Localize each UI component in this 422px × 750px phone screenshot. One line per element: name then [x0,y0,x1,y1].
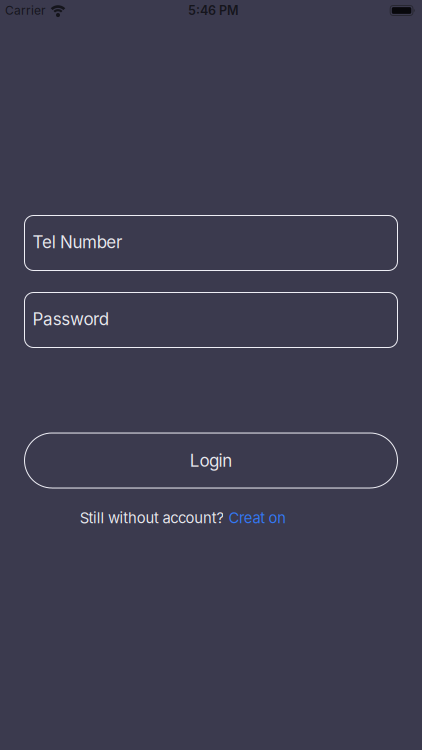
staticText: Login [190,450,232,471]
staticText: Still without account? [80,509,224,527]
staticText: Tel Number [32,232,122,252]
staticText: Creat on [228,509,286,527]
staticText: Password [32,309,109,329]
staticText: Carrier [5,3,46,18]
textField[interactable]: Tel Number [24,215,397,270]
button[interactable]: Login [24,433,397,488]
button[interactable]: Creat on [228,509,286,527]
secureTextField[interactable]: Password [24,292,397,347]
staticText: 5:46 PM [188,3,239,18]
